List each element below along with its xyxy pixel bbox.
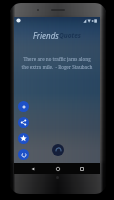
button[interactable]: Refresh <box>18 149 29 160</box>
button[interactable]: Add quote <box>18 101 29 112</box>
button[interactable]: Share <box>18 117 29 128</box>
staticText: Quotes <box>59 31 81 40</box>
button[interactable]: Favorite <box>18 133 29 144</box>
button[interactable]: Back <box>27 163 38 174</box>
staticText: There are no traffic jams along the extr… <box>17 56 97 71</box>
staticText: Friends <box>33 30 59 41</box>
button[interactable]: Home <box>52 163 63 174</box>
button[interactable]: Next quote <box>52 144 64 156</box>
button[interactable]: Recent apps <box>76 163 87 174</box>
